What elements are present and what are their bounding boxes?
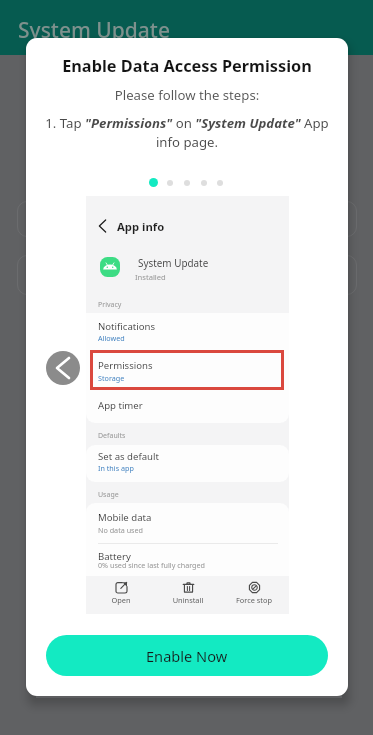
- staticText: Mobile data: [98, 511, 152, 524]
- staticText: System Update: [138, 256, 209, 269]
- staticText: App info: [117, 219, 165, 234]
- button[interactable]: Enable Now: [46, 635, 328, 676]
- staticText: No data used: [98, 525, 143, 535]
- button[interactable]: Uninstall: [162, 575, 214, 611]
- staticText: Notifications: [98, 320, 156, 333]
- staticText: Open: [95, 595, 147, 605]
- staticText: Battery: [98, 550, 131, 563]
- button[interactable]: Force stop: [228, 575, 280, 611]
- staticText: Defaults: [98, 431, 126, 441]
- staticText: Storage: [98, 373, 125, 383]
- staticText: 0% used since last fully charged: [98, 560, 205, 570]
- staticText: In this app: [98, 463, 134, 473]
- staticText: Please follow the steps:: [26, 86, 348, 104]
- button[interactable]: Open: [95, 575, 147, 611]
- staticText: Enable Data Access Permission: [26, 55, 348, 77]
- button[interactable]: Previous step: [46, 351, 80, 385]
- staticText: Set as default: [98, 450, 159, 463]
- staticText: Privacy: [98, 300, 122, 310]
- staticText: System Update: [18, 16, 170, 45]
- staticText: Enable Now: [146, 646, 228, 666]
- staticText: Force stop: [228, 595, 280, 605]
- staticText: 1. Tap "Permissions" on "System Update" …: [42, 114, 332, 150]
- staticText: Installed: [135, 272, 166, 282]
- staticText: Allowed: [98, 333, 125, 343]
- staticText: Usage: [98, 490, 119, 500]
- staticText: Uninstall: [162, 595, 214, 605]
- staticText: App timer: [98, 399, 143, 412]
- staticText: Permissions: [98, 359, 153, 372]
- button[interactable]: [90, 350, 284, 390]
